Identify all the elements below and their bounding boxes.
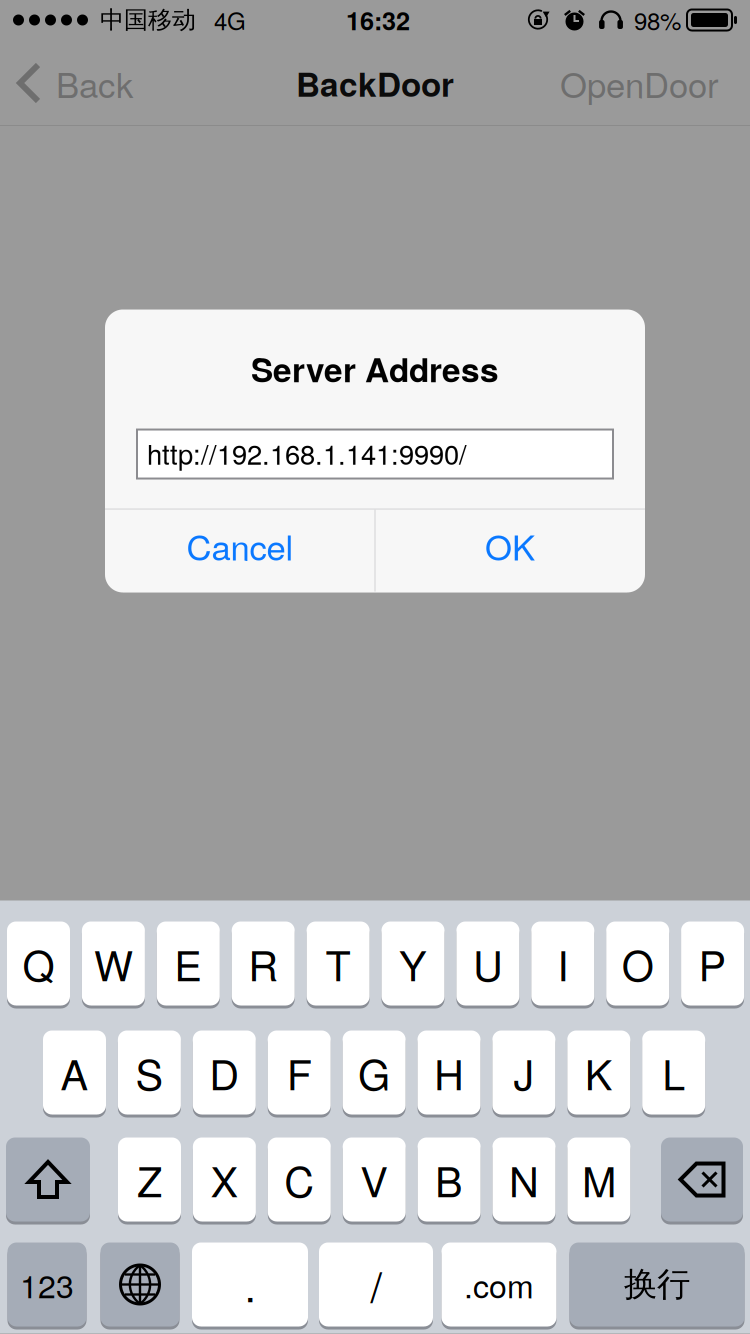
staticText: BackDoor (296, 59, 454, 107)
button[interactable]: H (417, 1030, 480, 1117)
staticText: 换行 (624, 1263, 690, 1305)
staticText: Z (137, 1150, 162, 1209)
staticText: . (244, 1255, 255, 1314)
staticText: OpenDoor (560, 58, 719, 108)
staticText: F (287, 1043, 312, 1102)
staticText: H (434, 1043, 464, 1102)
staticText: Y (399, 934, 427, 993)
staticText: / (370, 1255, 381, 1314)
staticText: L (662, 1043, 685, 1102)
button[interactable]: OK (375, 504, 645, 586)
staticText: D (209, 1043, 239, 1102)
staticText: 123 (20, 1262, 74, 1307)
staticText: E (174, 934, 202, 993)
button[interactable]: C (268, 1137, 331, 1224)
button[interactable]: B (418, 1137, 481, 1224)
button[interactable]: Z (118, 1137, 181, 1224)
button[interactable]: X (193, 1137, 256, 1224)
staticText: R (248, 934, 278, 993)
button[interactable]: S (118, 1030, 181, 1117)
button[interactable]: Y (381, 921, 444, 1008)
staticText: S (135, 1043, 163, 1102)
button[interactable]: Delete (661, 1137, 743, 1224)
button[interactable]: 123 (7, 1242, 86, 1329)
staticText: Back (56, 58, 133, 108)
staticText: M (582, 1150, 616, 1209)
button[interactable]: Cancel (105, 504, 374, 586)
button[interactable]: Back (0, 40, 149, 126)
button[interactable]: E (157, 921, 220, 1008)
staticText: Cancel (186, 521, 293, 570)
staticText: 16:32 (346, 2, 410, 38)
button[interactable]: W (82, 921, 145, 1008)
staticText: .com (464, 1262, 534, 1307)
button[interactable]: 换行 (569, 1242, 744, 1329)
staticText: V (360, 1150, 388, 1209)
staticText: I (557, 934, 568, 993)
button[interactable]: .com (441, 1242, 556, 1329)
button[interactable]: D (193, 1030, 256, 1117)
staticText: http://192.168.1.141:9990/ (147, 433, 467, 472)
button[interactable]: J (492, 1030, 555, 1117)
staticText: J (513, 1043, 534, 1102)
button[interactable]: OpenDoor (544, 40, 735, 126)
button[interactable]: T (307, 921, 370, 1008)
staticText: C (284, 1150, 314, 1209)
button[interactable]: / (319, 1242, 433, 1329)
staticText: 4G (214, 3, 246, 37)
button[interactable]: N (492, 1137, 555, 1224)
button[interactable]: P (681, 921, 744, 1008)
button[interactable]: R (232, 921, 295, 1008)
button[interactable]: Next keyboard (100, 1242, 179, 1329)
button[interactable]: K (567, 1030, 630, 1117)
button[interactable]: . (192, 1242, 308, 1329)
staticText: 中国移动 (100, 5, 196, 35)
staticText: N (509, 1150, 539, 1209)
button[interactable]: F (268, 1030, 331, 1117)
button[interactable]: A (43, 1030, 106, 1117)
staticText: OK (485, 521, 535, 570)
button[interactable]: G (343, 1030, 406, 1117)
staticText: W (94, 934, 133, 993)
button[interactable]: I (531, 921, 594, 1008)
staticText: G (358, 1043, 390, 1102)
staticText: P (699, 934, 727, 993)
staticText: O (622, 934, 654, 993)
staticText: T (326, 934, 351, 993)
staticText: A (60, 1043, 88, 1102)
staticText: B (435, 1150, 463, 1209)
staticText: Server Address (251, 345, 499, 392)
staticText: U (473, 934, 503, 993)
button[interactable]: Shift (6, 1137, 90, 1224)
button[interactable]: U (456, 921, 519, 1008)
staticText: X (210, 1150, 238, 1209)
button[interactable]: Q (7, 921, 70, 1008)
button[interactable]: O (606, 921, 669, 1008)
button[interactable]: M (567, 1137, 630, 1224)
button[interactable]: L (642, 1030, 705, 1117)
button[interactable]: V (343, 1137, 406, 1224)
staticText: Q (22, 934, 54, 993)
staticText: 98% (634, 3, 681, 37)
staticText: K (585, 1043, 613, 1102)
